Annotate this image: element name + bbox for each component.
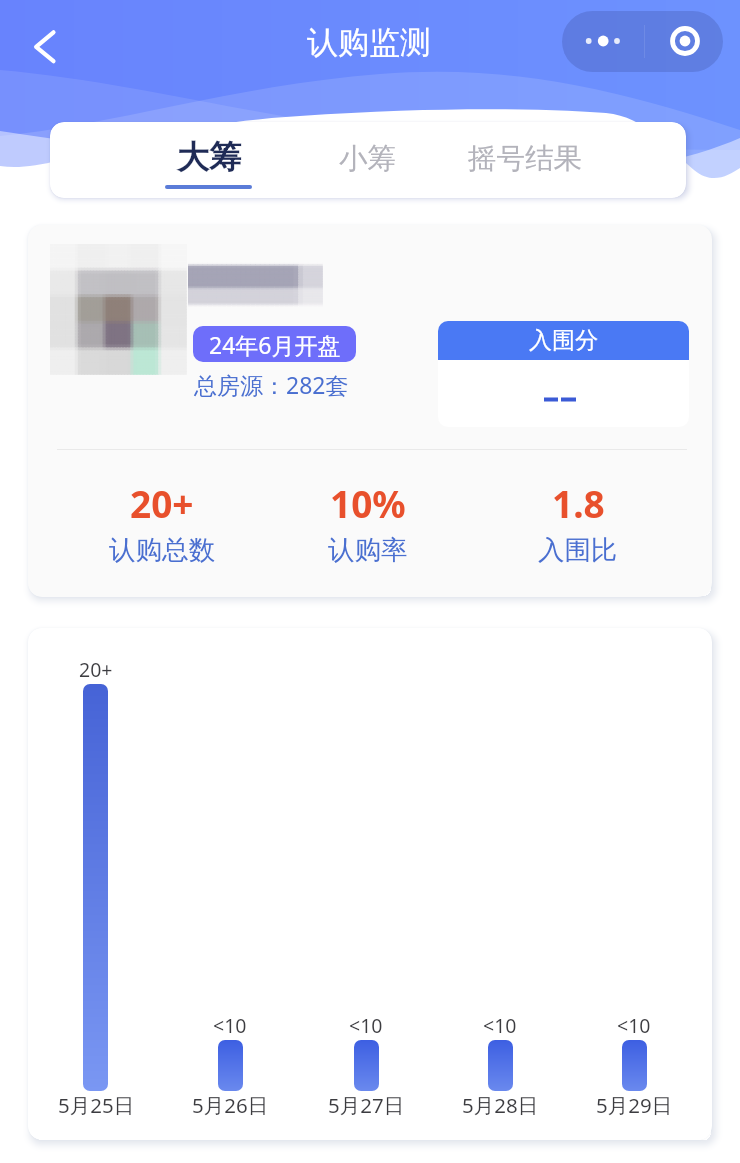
button[interactable]: More options	[562, 11, 644, 72]
button[interactable]: 入围分	[438, 321, 689, 427]
staticText: 认购率	[328, 533, 408, 566]
button[interactable]: 20+	[72, 478, 252, 566]
staticText: <10	[349, 1012, 383, 1039]
button[interactable]: 24年6月开盘	[193, 326, 356, 362]
staticText: 摇号结果	[468, 141, 582, 177]
staticText: 5月25日	[58, 1091, 135, 1119]
button[interactable]: 1.8	[488, 478, 668, 566]
button[interactable]: 大筹	[128, 122, 288, 198]
staticText: 5月27日	[328, 1091, 405, 1119]
staticText: 5月28日	[462, 1091, 539, 1119]
staticText: 1.8	[552, 478, 605, 528]
button[interactable]: 摇号结果	[445, 122, 605, 198]
staticText: <10	[617, 1012, 651, 1039]
button[interactable]: 小筹	[287, 122, 447, 198]
staticText: 5月26日	[192, 1091, 269, 1119]
staticText: <10	[213, 1012, 247, 1039]
staticText: 认购监测	[307, 23, 431, 59]
button[interactable]: Close mini program	[645, 11, 723, 72]
button[interactable]: 24年6月开盘	[28, 225, 712, 597]
staticText: 20+	[130, 478, 194, 528]
button[interactable]: 10%	[278, 478, 458, 566]
staticText: 大筹	[177, 137, 241, 177]
staticText: 入围比	[538, 533, 618, 566]
staticText: 入围分	[529, 326, 598, 355]
staticText: 24年6月开盘	[209, 329, 341, 360]
staticText: 小筹	[339, 141, 396, 177]
staticText: 认购总数	[109, 533, 215, 566]
staticText: 5月29日	[596, 1091, 673, 1119]
button[interactable]: Back	[18, 20, 72, 74]
staticText: <10	[483, 1012, 517, 1039]
staticText: 10%	[330, 478, 406, 528]
staticText: 20+	[79, 656, 113, 683]
staticText: 总房源：282套	[194, 369, 349, 400]
